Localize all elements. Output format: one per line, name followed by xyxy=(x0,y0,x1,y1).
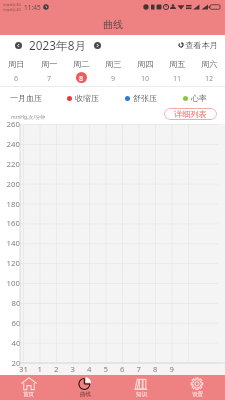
staticText: 心率 xyxy=(191,93,207,103)
button[interactable]: 周六 xyxy=(193,55,225,86)
staticText: 7 xyxy=(47,73,52,83)
staticText: 中国移动 4G xyxy=(3,3,21,7)
staticText: 2023年8月 xyxy=(29,37,87,53)
staticText: 周三 xyxy=(105,59,122,69)
staticText: 8 xyxy=(79,73,84,83)
button[interactable]: 周四 xyxy=(129,55,161,86)
button[interactable]: 舒张压 xyxy=(125,93,157,103)
staticText: 曲线 xyxy=(80,391,91,398)
staticText: 详细列表 xyxy=(174,109,207,119)
button[interactable]: 曲线 xyxy=(57,375,113,400)
staticText: 曲线 xyxy=(103,18,123,31)
staticText: mmHg,次/分钟 xyxy=(11,114,46,121)
button[interactable]: 首页 xyxy=(0,375,57,400)
button[interactable]: 查看本月 xyxy=(178,40,218,50)
staticText: 知识 xyxy=(136,391,147,398)
button[interactable]: 周一 xyxy=(33,55,65,86)
button[interactable]: 周二 xyxy=(65,55,97,86)
button[interactable]: 详细列表 xyxy=(164,108,217,120)
button[interactable]: 心率 xyxy=(183,93,207,103)
button[interactable]: 2023年8月 xyxy=(15,37,101,53)
button[interactable]: 周日 xyxy=(0,55,33,86)
staticText: 周一 xyxy=(41,59,58,69)
staticText: 6 xyxy=(14,73,19,83)
staticText: 一月血压 xyxy=(10,93,42,103)
button[interactable]: 收缩压 xyxy=(67,93,99,103)
staticText: 周日 xyxy=(8,59,25,69)
staticText: 周二 xyxy=(73,59,90,69)
staticText: 首页 xyxy=(23,391,34,398)
staticText: 9 xyxy=(111,73,116,83)
staticText: 12 xyxy=(205,73,214,83)
button[interactable]: 设置 xyxy=(169,375,225,400)
staticText: 11 xyxy=(173,73,182,83)
staticText: 查看本月 xyxy=(185,40,218,50)
staticText: 11:45 xyxy=(24,3,41,12)
button[interactable]: 周三 xyxy=(97,55,129,86)
button[interactable]: 知识 xyxy=(113,375,169,400)
staticText: 中国移动 4G xyxy=(3,8,21,12)
staticText: 周四 xyxy=(137,59,154,69)
staticText: 收缩压 xyxy=(75,93,99,103)
staticText: 周六 xyxy=(201,59,218,69)
staticText: 周五 xyxy=(169,59,186,69)
staticText: 10 xyxy=(141,73,150,83)
staticText: 舒张压 xyxy=(133,93,157,103)
button[interactable]: 周五 xyxy=(161,55,193,86)
staticText: 设置 xyxy=(192,391,203,398)
